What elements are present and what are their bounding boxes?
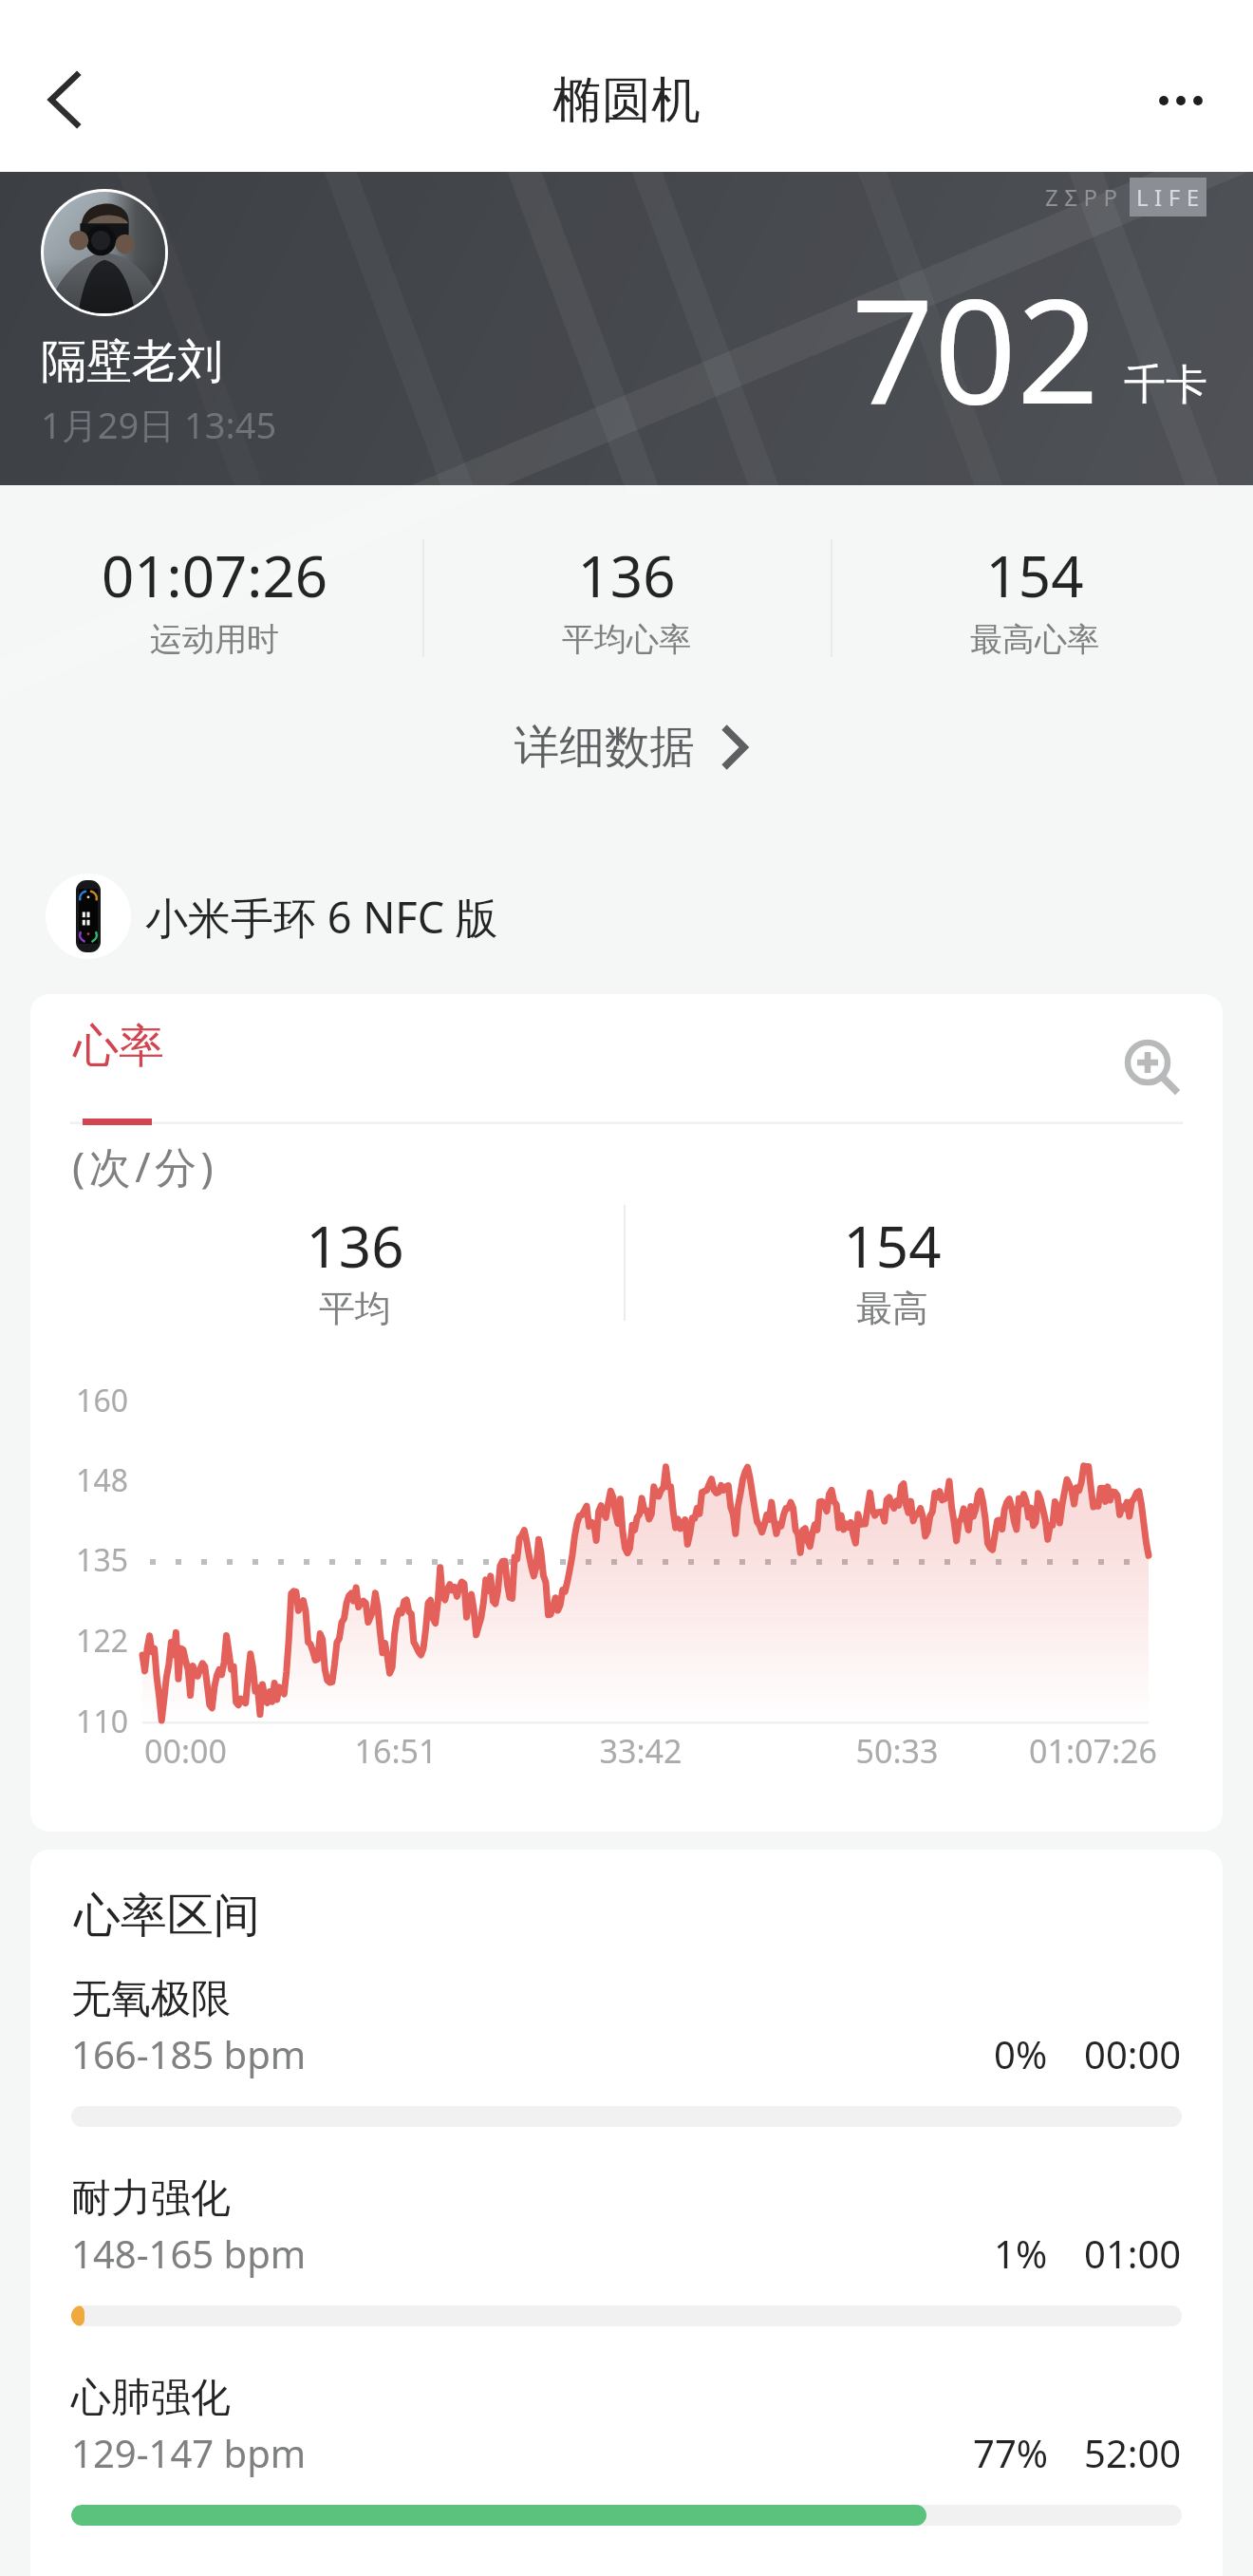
staticText: 详细数据	[514, 719, 695, 776]
staticText: 00:00	[144, 1729, 227, 1773]
button[interactable]: 小米手环 6 NFC 版	[0, 859, 1253, 973]
staticText: 00:00	[1084, 2028, 1182, 2079]
staticText: 心肺强化	[71, 2373, 231, 2423]
staticText: 110	[30, 1701, 128, 1742]
staticText: 最高心率	[826, 619, 1244, 660]
staticText: 01:00	[1084, 2228, 1182, 2279]
staticText: 平均	[118, 1286, 592, 1331]
button[interactable]: Zoom chart	[1102, 1017, 1193, 1108]
staticText: 01:07:26	[1029, 1729, 1157, 1773]
staticText: 椭圆机	[552, 69, 701, 132]
staticText: 1%	[994, 2228, 1048, 2279]
staticText: 无氧极限	[71, 1974, 231, 2024]
button[interactable]: Profile photo	[44, 192, 165, 313]
staticText: 16:51	[339, 1729, 453, 1773]
staticText: 702	[851, 250, 1099, 446]
staticText: 160	[30, 1380, 128, 1421]
staticText: 1月29日 13:45	[41, 400, 277, 449]
staticText: 52:00	[1084, 2427, 1182, 2478]
staticText: 心率	[73, 1018, 164, 1075]
staticText: 心率区间	[74, 1887, 260, 1946]
staticText: 136	[118, 1207, 592, 1285]
staticText: 135	[30, 1539, 128, 1581]
staticText: 154	[826, 536, 1244, 614]
button[interactable]: 心率	[53, 1003, 184, 1090]
staticText: 耐力强化	[71, 2173, 231, 2224]
staticText: 136	[418, 536, 835, 614]
staticText: (次/分)	[72, 1138, 218, 1194]
button[interactable]: 详细数据	[492, 707, 775, 787]
staticText: 166-185 bpm	[71, 2028, 307, 2079]
staticText: 129-147 bpm	[71, 2427, 307, 2478]
staticText: 148-165 bpm	[71, 2228, 307, 2279]
staticText: 122	[30, 1620, 128, 1662]
staticText: 小米手环 6 NFC 版	[145, 888, 498, 946]
staticText: 0%	[994, 2028, 1048, 2079]
staticText: 千卡	[1124, 359, 1207, 411]
staticText: 154	[655, 1207, 1130, 1285]
button[interactable]: 心肺强化	[71, 2373, 1182, 2526]
staticText: 50:33	[840, 1729, 954, 1773]
staticText: LIFE	[1136, 181, 1206, 213]
staticText: 77%	[973, 2427, 1048, 2478]
staticText: 隔壁老刘	[41, 333, 223, 390]
staticText: 148	[30, 1459, 128, 1501]
button[interactable]: More options	[1135, 54, 1226, 145]
staticText: 01:07:26	[6, 536, 423, 614]
button[interactable]: Back	[18, 54, 109, 145]
staticText: 最高	[655, 1286, 1130, 1331]
button[interactable]: 耐力强化	[71, 2173, 1182, 2326]
button[interactable]: 无氧极限	[71, 1974, 1182, 2127]
staticText: 运动用时	[6, 619, 423, 660]
staticText: 平均心率	[418, 619, 835, 660]
staticText: 33:42	[584, 1729, 698, 1773]
staticText: ZΣPP	[1045, 181, 1124, 213]
